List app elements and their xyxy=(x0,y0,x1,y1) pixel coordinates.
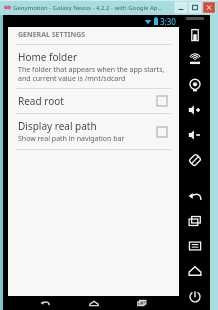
button[interactable]: Recents xyxy=(131,296,153,310)
button[interactable]: Camera xyxy=(179,72,210,97)
button[interactable]: Volume down xyxy=(179,122,210,147)
button[interactable]: Home xyxy=(83,296,105,310)
button[interactable]: Window button xyxy=(203,2,215,13)
button[interactable]: Toggle Read root xyxy=(157,96,167,106)
button[interactable]: Display real path xyxy=(8,114,179,149)
button[interactable]: Read root xyxy=(8,89,179,113)
button[interactable]: Window button xyxy=(175,2,187,13)
button[interactable]: Home xyxy=(179,258,210,283)
button[interactable]: Back xyxy=(34,296,56,310)
button[interactable]: Menu xyxy=(179,233,210,258)
button[interactable]: Home folder xyxy=(8,45,179,88)
button[interactable]: Back xyxy=(179,183,210,208)
button[interactable]: Recents xyxy=(179,208,210,233)
staticText: 3:30 xyxy=(160,16,176,27)
staticText: Read root xyxy=(18,94,64,108)
button[interactable]: Volume up xyxy=(179,97,210,122)
staticText: GENERAL SETTINGS xyxy=(18,30,86,40)
button[interactable]: Toggle Display real path xyxy=(157,127,167,137)
staticText: The folder that appears when the app sta… xyxy=(18,65,165,83)
staticText: Home folder xyxy=(18,50,78,64)
staticText: Display real path xyxy=(18,119,97,133)
button[interactable]: Rotate xyxy=(179,147,210,172)
button[interactable]: Power xyxy=(179,283,210,308)
staticText: Show real path in navigation bar xyxy=(18,134,125,144)
button[interactable]: GPS xyxy=(179,47,210,72)
staticText: Genymotion - Galaxy Nexus - 4.2.2 - with… xyxy=(13,4,163,12)
button[interactable]: Window button xyxy=(189,2,201,13)
button[interactable]: Battery xyxy=(179,22,210,47)
